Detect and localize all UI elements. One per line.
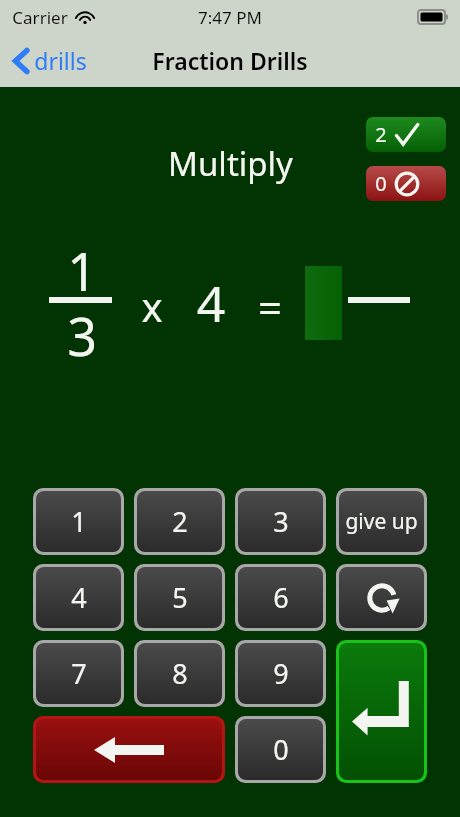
button[interactable]: 0: [366, 166, 446, 201]
staticText: Multiply: [168, 141, 293, 186]
button[interactable]: Backspace: [33, 716, 225, 783]
staticText: =: [250, 278, 290, 335]
staticText: 3: [273, 503, 289, 540]
staticText: drills: [34, 45, 87, 76]
button[interactable]: 9: [235, 640, 326, 707]
button[interactable]: 4: [33, 564, 124, 631]
staticText: 4: [191, 269, 231, 337]
staticText: 1: [71, 503, 87, 540]
staticText: 8: [172, 655, 188, 692]
staticText: 6: [273, 579, 289, 616]
button[interactable]: 5: [134, 564, 225, 631]
button[interactable]: 7: [33, 640, 124, 707]
staticText: Fraction Drills: [152, 45, 308, 76]
button[interactable]: 8: [134, 640, 225, 707]
button[interactable]: 0: [235, 716, 326, 783]
button[interactable]: 2: [134, 488, 225, 555]
staticText: 2: [172, 503, 188, 540]
button[interactable]: Restart: [336, 564, 427, 631]
staticText: 4: [71, 579, 87, 616]
staticText: 0: [273, 731, 289, 768]
staticText: 2: [375, 121, 387, 148]
staticText: 7: [71, 655, 87, 692]
staticText: 0: [375, 170, 387, 197]
staticText: give up: [345, 507, 418, 536]
button[interactable]: 6: [235, 564, 326, 631]
button[interactable]: give up: [336, 488, 427, 555]
button[interactable]: Enter: [336, 640, 427, 783]
staticText: 9: [273, 655, 289, 692]
button[interactable]: 2: [366, 117, 446, 152]
staticText: x: [134, 279, 170, 333]
button[interactable]: 1: [33, 488, 124, 555]
button[interactable]: drills: [10, 39, 91, 82]
staticText: Carrier: [12, 6, 68, 29]
staticText: 7:47 PM: [198, 6, 262, 29]
staticText: 5: [172, 579, 188, 616]
staticText: 3: [62, 300, 102, 371]
staticText: 1: [62, 235, 102, 306]
button[interactable]: 3: [235, 488, 326, 555]
